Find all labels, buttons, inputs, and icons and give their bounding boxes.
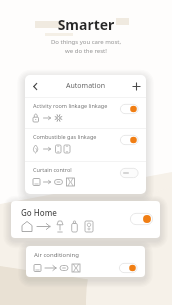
button[interactable]: Activity room linkage linkage xyxy=(25,97,146,128)
staticText: Go Home xyxy=(21,207,57,218)
button[interactable]: Back xyxy=(25,76,45,96)
button[interactable]: Combustible gas linkage xyxy=(25,128,146,161)
button[interactable]: Add xyxy=(126,76,146,96)
staticText: Automation xyxy=(45,81,126,91)
staticText: Smarter xyxy=(0,15,172,34)
button[interactable]: Curtain control xyxy=(25,161,146,194)
staticText: Curtain control xyxy=(33,166,72,173)
staticText: Air conditioning xyxy=(34,251,79,259)
staticText: Do things you care most, we do the rest! xyxy=(0,38,172,55)
staticText: Combustible gas linkage xyxy=(33,133,97,140)
staticText: Activity room linkage linkage xyxy=(33,102,108,109)
button[interactable]: Go Home xyxy=(11,201,160,238)
button[interactable]: Air conditioning xyxy=(26,246,145,277)
